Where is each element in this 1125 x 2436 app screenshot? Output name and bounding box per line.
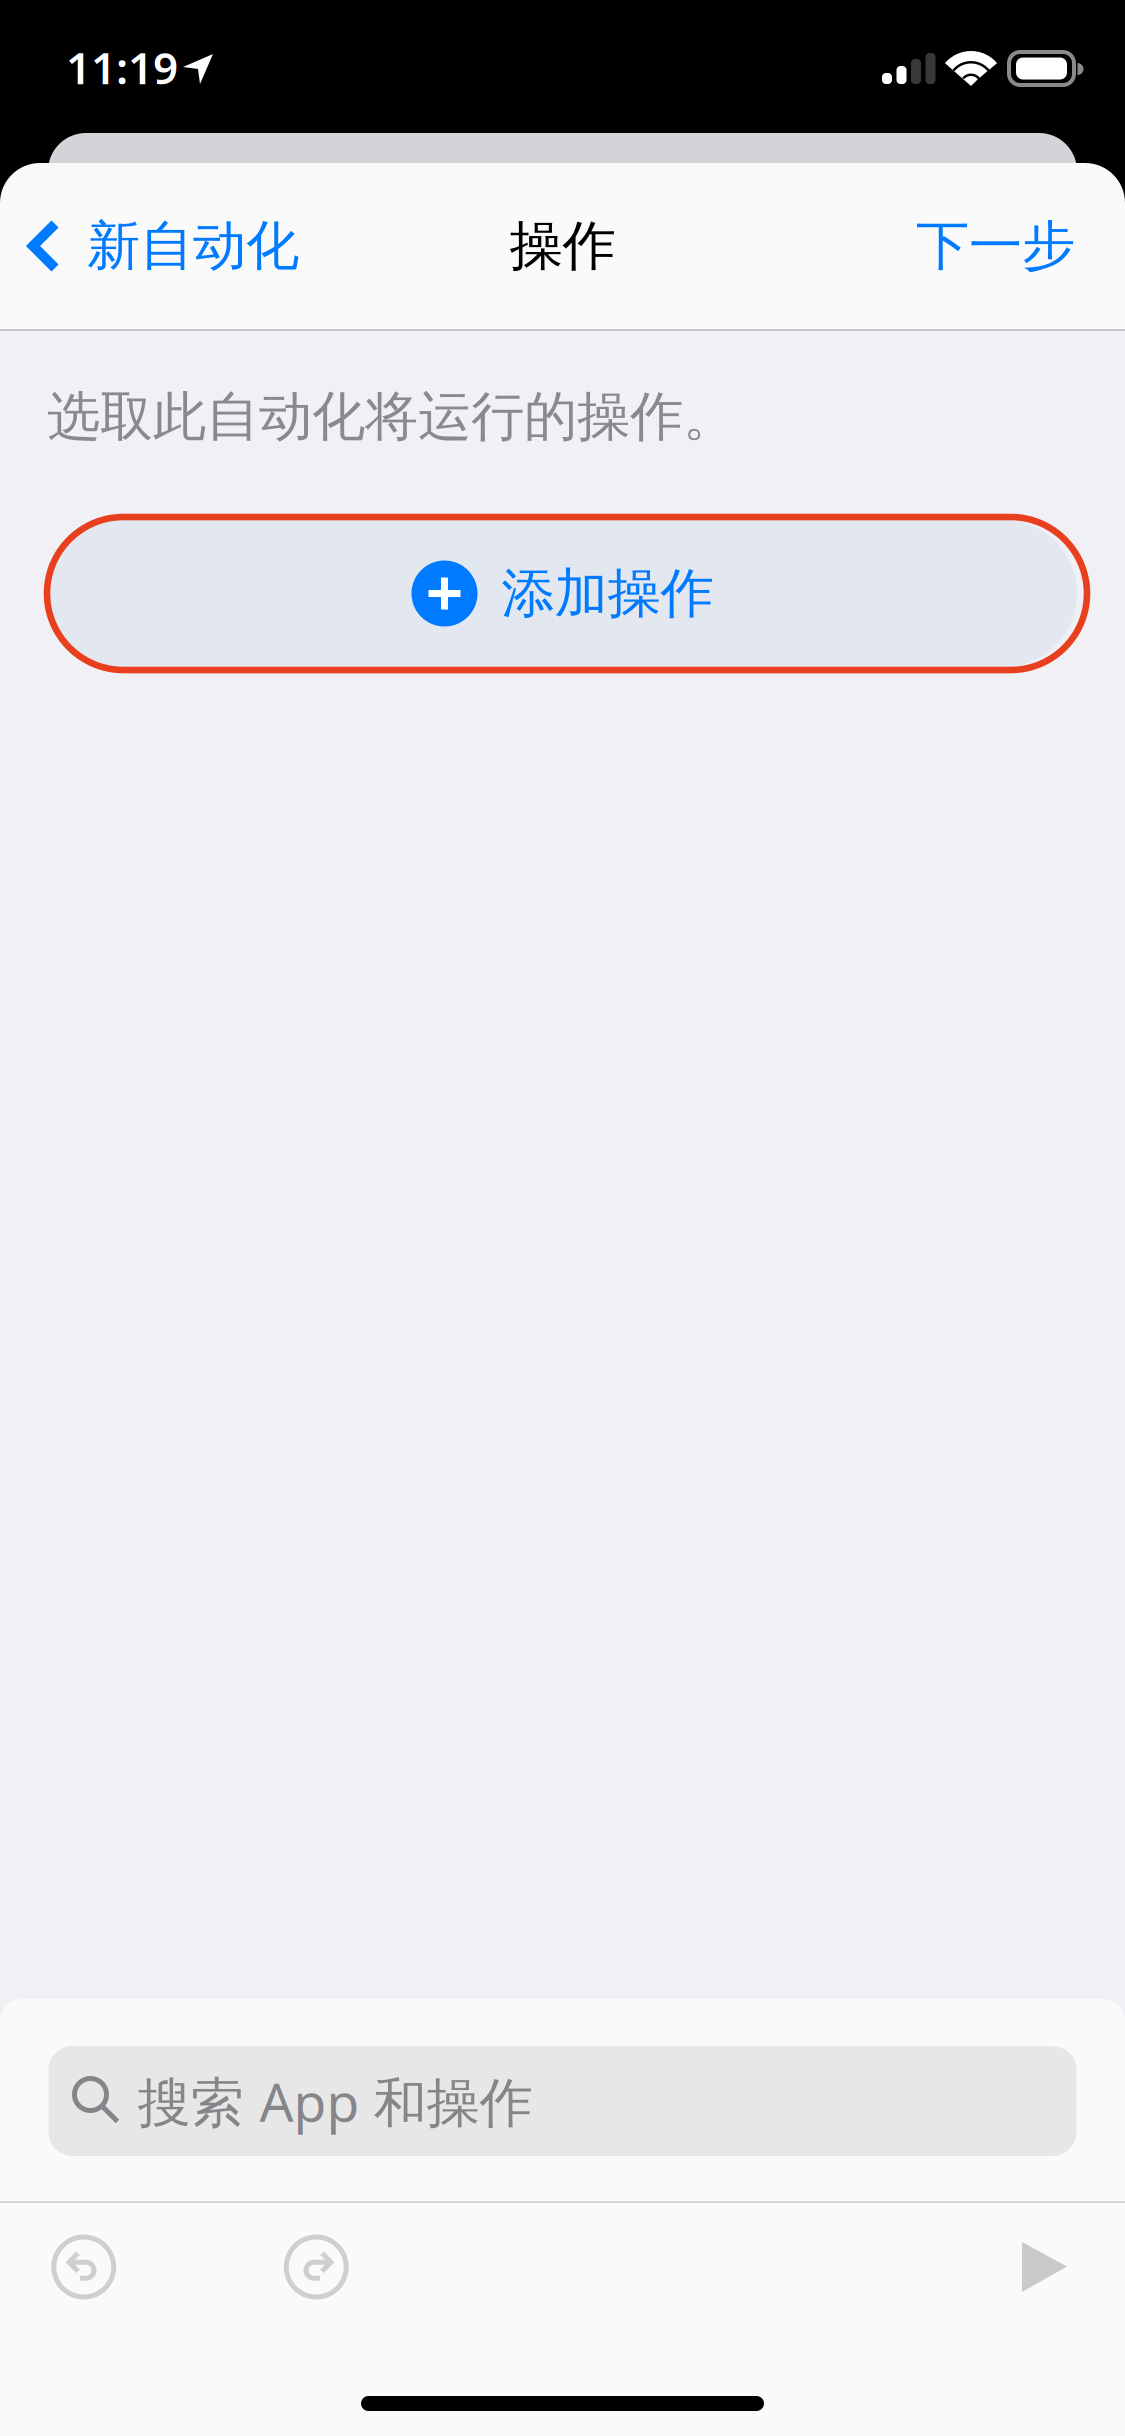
button[interactable]: 运行 [997, 2211, 1093, 2323]
button[interactable]: 重做 [262, 2211, 370, 2323]
button[interactable]: 搜索 App 和操作 [48, 1999, 1076, 2201]
button[interactable]: 添加操作 [0, 513, 1125, 673]
staticText: 添加操作 [501, 561, 713, 626]
button[interactable]: 撤销 [30, 2211, 137, 2323]
staticText: 新自动化 [87, 213, 299, 279]
staticText: 操作 [509, 213, 615, 279]
staticText: 11:19 [66, 38, 178, 96]
button[interactable]: 下一步 [866, 163, 1125, 329]
staticText: 搜索 App 和操作 [137, 2066, 532, 2136]
button[interactable]: 新自动化 [0, 163, 323, 329]
staticText: 选取此自动化将运行的操作。 [47, 384, 736, 449]
staticText: 下一步 [916, 213, 1075, 279]
